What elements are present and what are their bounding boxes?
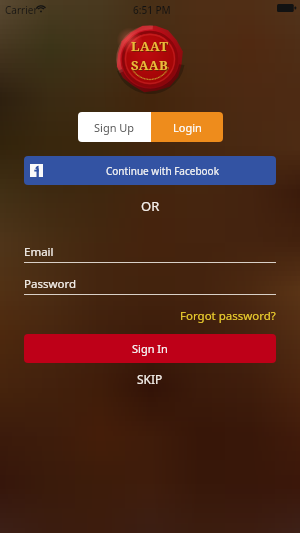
staticText: SAAB <box>132 57 170 75</box>
button[interactable]: Forgot password? <box>180 308 276 324</box>
staticText: Sign In <box>132 341 168 356</box>
staticText: SAAB <box>131 56 169 74</box>
button[interactable]: Continue with Facebook <box>24 156 276 185</box>
staticText: Password <box>24 276 77 292</box>
staticText: LAAT <box>132 38 170 56</box>
staticText: Sign Up <box>94 120 135 135</box>
staticText: Login <box>173 120 202 135</box>
button[interactable]: Sign In <box>24 334 276 363</box>
staticText: Continue with Facebook <box>106 164 219 178</box>
other: Facebook <box>30 164 43 177</box>
staticText: OR <box>141 197 160 215</box>
staticText: LAAT <box>131 37 169 55</box>
staticText: Carrier <box>5 3 38 17</box>
other: Battery <box>277 4 296 12</box>
button[interactable]: Sign Up <box>78 112 151 142</box>
button[interactable]: Password <box>24 274 276 295</box>
button[interactable]: Email <box>24 242 276 263</box>
button[interactable]: Login <box>151 112 223 142</box>
button[interactable]: SKIP <box>137 371 163 387</box>
staticText: Email <box>24 244 54 260</box>
staticText: 6:51 PM <box>133 3 171 17</box>
